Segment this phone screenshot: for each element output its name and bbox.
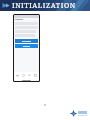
button[interactable]: Nav item 1 (15, 73, 20, 78)
staticText: INITIALIZATION (12, 1, 76, 11)
button[interactable]: Nav item 4 (33, 73, 38, 78)
button[interactable]: Nav item 3 (27, 73, 32, 78)
button[interactable]: Company logo (70, 110, 87, 117)
button[interactable]: Nav item 1 (14, 15, 39, 81)
button[interactable]: INITIALIZATION (0, 0, 90, 11)
button[interactable] (15, 44, 38, 48)
button[interactable] (15, 39, 38, 43)
button[interactable]: Nav item 2 (21, 73, 26, 78)
